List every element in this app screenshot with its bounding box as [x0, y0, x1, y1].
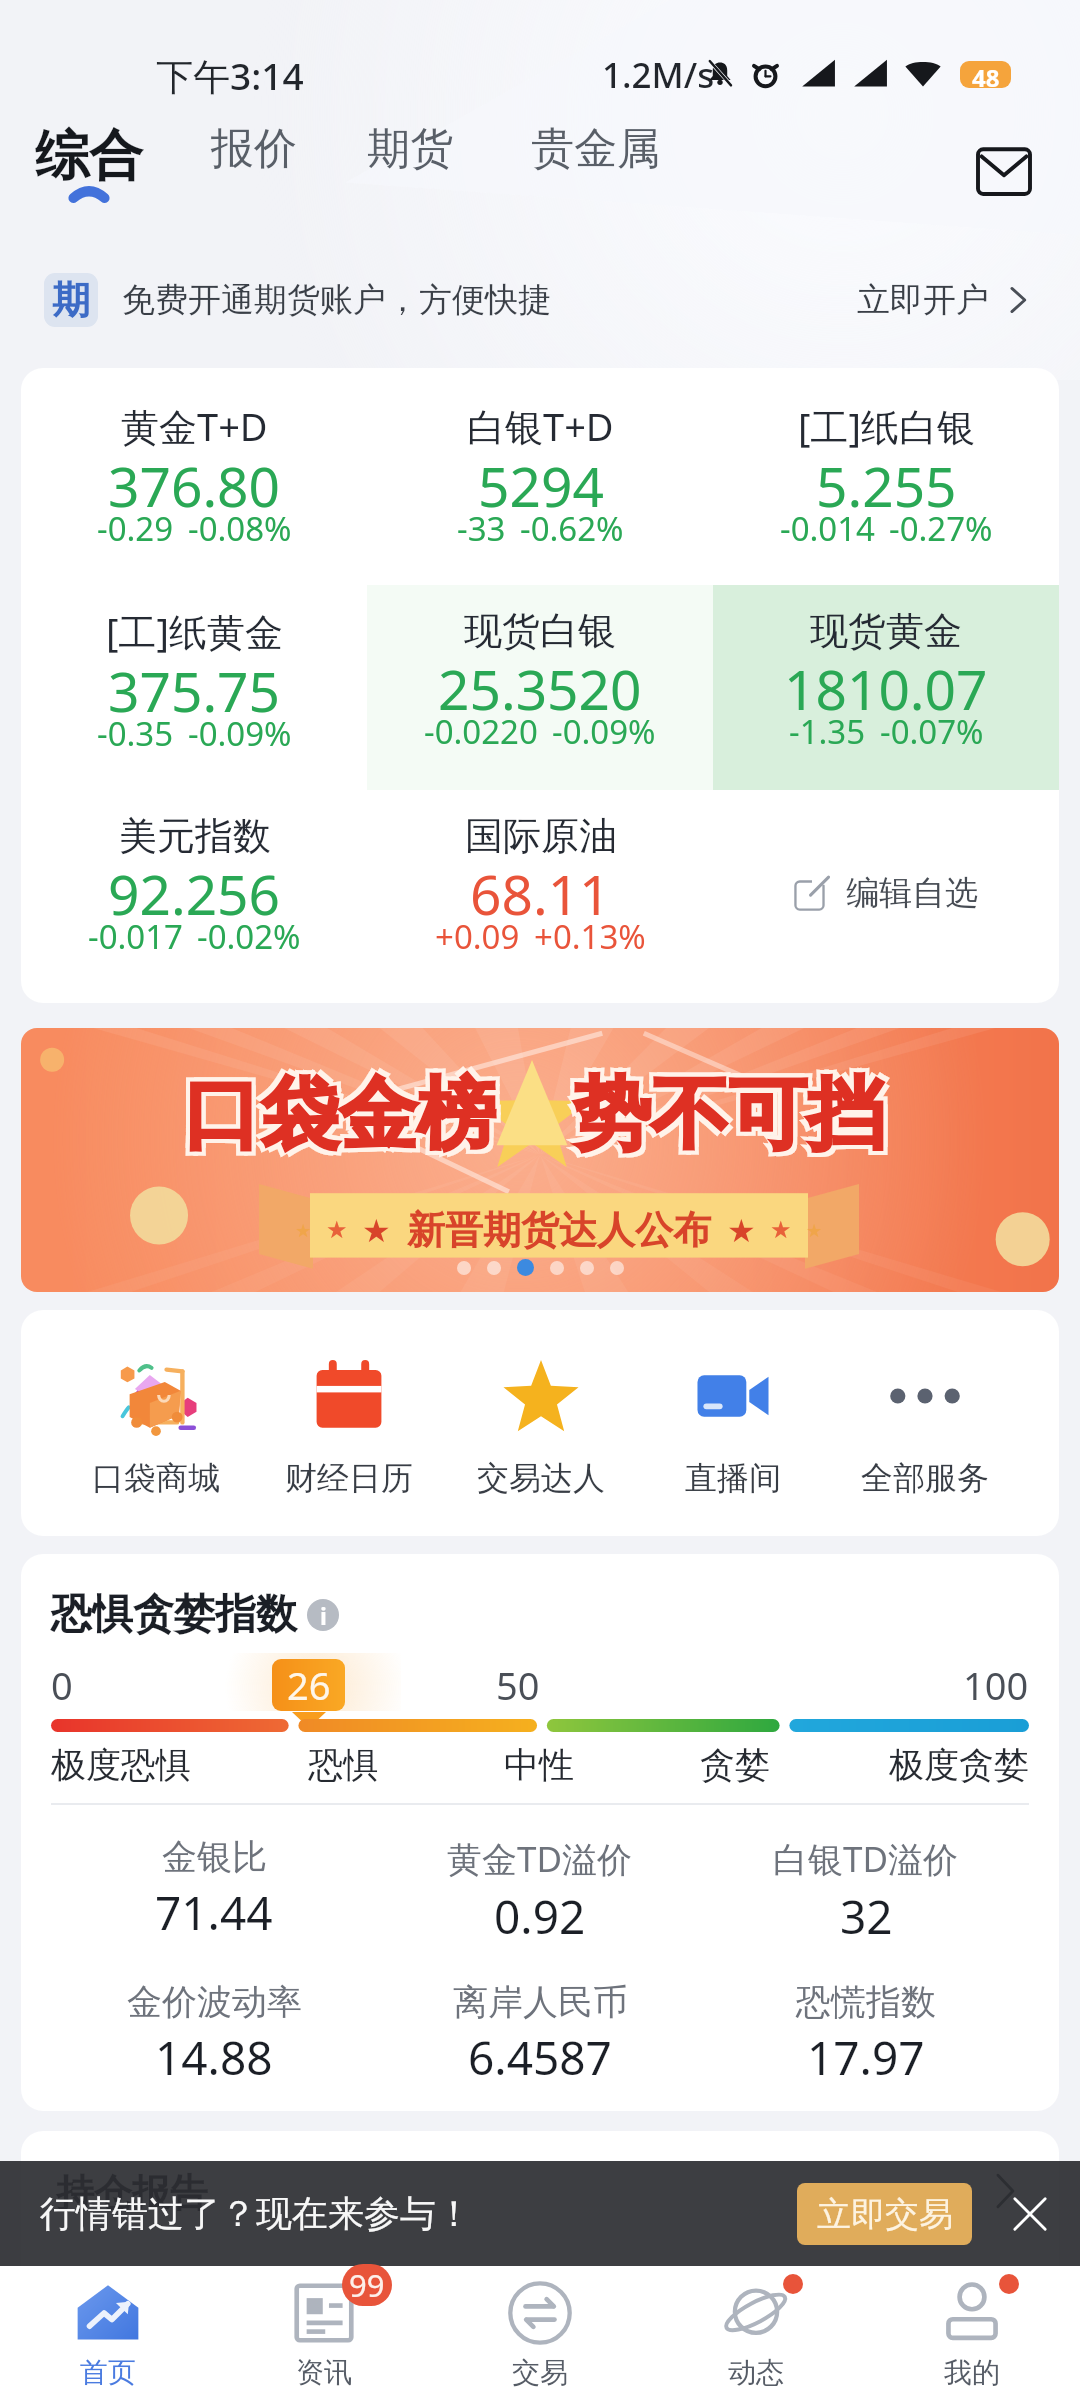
staticText: 交易达人 — [477, 1458, 605, 1498]
staticText: 5.255 — [816, 448, 957, 523]
staticText: 势不可挡 — [569, 1062, 881, 1160]
staticText: -0.09% — [552, 709, 656, 754]
staticText: 14.88 — [155, 2026, 273, 2089]
button[interactable]: 白银T+D — [367, 380, 713, 585]
staticText: -0.014 — [780, 506, 875, 551]
staticText: 金银比 — [162, 1835, 267, 1879]
staticText: ★ — [727, 1212, 756, 1249]
staticText: 首页 — [80, 2355, 136, 2390]
staticText: 26 — [287, 1659, 331, 1711]
button[interactable]: 首页 — [0, 2266, 216, 2400]
button[interactable]: 贵金属 — [531, 122, 660, 226]
staticText: 编辑自选 — [846, 872, 978, 914]
staticText: 中性 — [441, 1743, 637, 1787]
staticText: -0.08% — [188, 506, 292, 551]
staticText: 375.75 — [108, 653, 281, 728]
button[interactable]: [工]纸黄金 — [21, 585, 367, 790]
button[interactable]: 全部服务 — [829, 1352, 1021, 1498]
button[interactable]: 交易 — [432, 2266, 648, 2400]
staticText: 黄金TD溢价 — [447, 1835, 633, 1883]
staticText: -0.07% — [880, 709, 984, 754]
button[interactable]: 现货黄金 — [713, 585, 1059, 790]
button[interactable]: Messages — [962, 126, 1046, 210]
staticText: 口袋金榜 — [187, 1070, 499, 1168]
staticText: ★ — [295, 1220, 312, 1241]
staticText: 极度恐惧 — [51, 1743, 246, 1787]
button[interactable]: 报价 — [211, 122, 297, 226]
staticText: 期货 — [367, 122, 453, 176]
button[interactable]: Close — [1002, 2186, 1058, 2242]
staticText: 17.97 — [807, 2026, 925, 2089]
staticText: 白银T+D — [467, 400, 614, 452]
staticText: 6.4587 — [468, 2026, 612, 2089]
staticText: 动态 — [728, 2355, 784, 2390]
staticText: -0.27% — [889, 506, 993, 551]
staticText: 0 — [51, 1659, 73, 1711]
button[interactable]: 编辑自选 — [713, 790, 1059, 995]
staticText: 32 — [840, 1885, 893, 1948]
staticText: 口袋金榜 — [179, 1062, 491, 1160]
button[interactable]: 财经日历 — [252, 1352, 445, 1498]
staticText: -0.09% — [188, 711, 292, 756]
staticText: 势不可挡 — [573, 1066, 885, 1164]
staticText: ★ — [770, 1216, 792, 1244]
button[interactable]: [工]纸白银 — [713, 380, 1059, 585]
button[interactable]: 持仓报告 — [56, 2169, 1027, 2217]
staticText: [工]纸白银 — [798, 400, 976, 452]
button[interactable]: 口袋金榜 — [21, 1028, 1059, 1292]
staticText: 直播间 — [685, 1458, 781, 1498]
staticText: 资讯 — [296, 2355, 352, 2390]
button[interactable]: 现货白银 — [367, 585, 713, 790]
staticText: 口袋金榜 — [179, 1070, 491, 1168]
button[interactable]: 99 — [216, 2266, 432, 2400]
button[interactable]: 交易达人 — [445, 1352, 637, 1498]
staticText: ★ — [806, 1220, 823, 1241]
staticText: 行情错过了？现在来参与！ — [40, 2191, 472, 2236]
staticText: -0.62% — [520, 506, 624, 551]
button[interactable]: 直播间 — [637, 1352, 829, 1498]
staticText: 我的 — [944, 2355, 1000, 2390]
staticText: 全部服务 — [861, 1458, 989, 1498]
button[interactable]: 期 — [44, 232, 1035, 368]
staticText: -1.35 — [789, 709, 866, 754]
staticText: +0.13% — [534, 914, 646, 959]
staticText: 贵金属 — [531, 122, 660, 176]
staticText: -0.02% — [197, 914, 301, 959]
staticText: 48 — [972, 61, 1000, 88]
button[interactable]: 口袋商城 — [59, 1352, 252, 1498]
staticText: 99 — [349, 2264, 385, 2306]
button[interactable]: 美元指数 — [21, 790, 367, 995]
button[interactable]: 国际原油 — [367, 790, 713, 995]
staticText: 1810.07 — [784, 651, 988, 726]
staticText: -0.017 — [88, 914, 183, 959]
staticText: 金价波动率 — [127, 1980, 302, 2024]
staticText: 口袋金榜 — [187, 1062, 499, 1160]
button[interactable]: 我的 — [864, 2266, 1080, 2400]
staticText: 极度贪婪 — [833, 1743, 1029, 1787]
staticText: i — [320, 1600, 327, 1631]
staticText: 白银TD溢价 — [773, 1835, 959, 1883]
staticText: 恐惧贪婪指数 — [51, 1589, 297, 1641]
staticText: 交易 — [512, 2355, 568, 2390]
staticText: 1.2M/s — [602, 51, 715, 99]
button[interactable]: 动态 — [648, 2266, 864, 2400]
button[interactable]: 立即交易 — [797, 2183, 972, 2245]
button[interactable]: 黄金T+D — [21, 380, 367, 585]
staticText: -0.0220 — [424, 709, 538, 754]
staticText: 免费开通期货账户，方便快捷 — [122, 279, 551, 321]
staticText: 期 — [52, 276, 90, 324]
staticText: 国际原油 — [465, 812, 617, 860]
staticText: [工]纸黄金 — [106, 605, 284, 657]
staticText: 376.80 — [108, 448, 281, 523]
staticText: 立即开户 — [857, 279, 989, 321]
staticText: 贪婪 — [637, 1743, 833, 1787]
staticText: 恐慌指数 — [796, 1980, 936, 2024]
staticText: 持仓报告 — [56, 2169, 208, 2217]
button[interactable]: 期货 — [367, 122, 453, 226]
button[interactable]: 综合 — [35, 122, 143, 226]
staticText: 68.11 — [470, 856, 611, 931]
staticText: ★ — [326, 1216, 348, 1244]
staticText: 综合 — [35, 122, 143, 190]
staticText: 92.256 — [108, 856, 281, 931]
staticText: -33 — [457, 506, 506, 551]
